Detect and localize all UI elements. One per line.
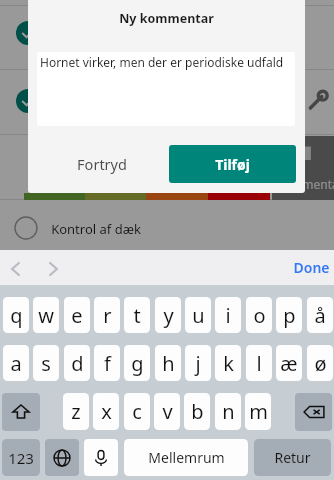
button[interactable]: p	[276, 297, 302, 333]
button[interactable]: æ	[276, 345, 302, 381]
staticText: Tilføj	[215, 155, 250, 174]
staticText: s	[41, 350, 51, 377]
button[interactable]: h	[155, 345, 181, 381]
staticText: y	[163, 302, 174, 329]
button[interactable]: w	[33, 297, 59, 333]
button[interactable]: v	[154, 393, 180, 430]
button[interactable]: j	[185, 345, 211, 381]
button[interactable]: Backspace	[295, 393, 332, 431]
staticText: a	[10, 350, 22, 377]
button[interactable]: q	[3, 297, 29, 333]
staticText: d	[71, 350, 84, 377]
staticText: n	[222, 398, 235, 425]
button[interactable]: Previous field	[4, 257, 28, 281]
staticText: Fortryd	[77, 154, 127, 174]
staticText: j	[195, 350, 201, 377]
button[interactable]: s	[33, 345, 59, 381]
button[interactable]: u	[185, 297, 211, 333]
button[interactable]: a	[3, 345, 29, 381]
button[interactable]: Shift	[2, 393, 40, 431]
staticText: i	[225, 302, 231, 329]
staticText: f	[104, 350, 111, 377]
staticText: 123	[8, 448, 34, 468]
button[interactable]: g	[124, 345, 150, 381]
button[interactable]: x	[93, 393, 119, 430]
button[interactable]: n	[215, 393, 241, 430]
staticText: Mellemrum	[148, 448, 225, 467]
staticText: ø	[314, 350, 327, 377]
staticText: æ	[280, 350, 298, 377]
button[interactable]: m	[245, 393, 271, 430]
button[interactable]: y	[155, 297, 181, 333]
button[interactable]: d	[64, 345, 90, 381]
button[interactable]: r	[94, 297, 120, 333]
button[interactable]: Retur	[254, 439, 331, 476]
button[interactable]: Tilføj	[169, 145, 296, 183]
staticText: x	[101, 398, 112, 425]
staticText: h	[162, 350, 175, 377]
staticText: å	[314, 302, 326, 329]
button[interactable]: f	[94, 345, 120, 381]
staticText: g	[131, 350, 144, 377]
staticText: q	[10, 302, 23, 329]
staticText: Done	[293, 258, 330, 277]
staticText: Retur	[274, 448, 311, 467]
button[interactable]: Next field	[41, 257, 65, 281]
staticText: u	[192, 302, 205, 329]
button[interactable]: l	[246, 345, 272, 381]
staticText: Hornet virker, men der er periodiske udf…	[40, 54, 284, 70]
staticText: t	[133, 302, 141, 329]
button[interactable]: 123	[2, 439, 40, 476]
button[interactable]: Change keyboard	[45, 439, 79, 476]
button[interactable]: ø	[307, 345, 333, 381]
button[interactable]: t	[124, 297, 150, 333]
button[interactable]: Mellemrum	[124, 439, 248, 476]
staticText: r	[103, 302, 112, 329]
staticText: m	[249, 398, 268, 425]
staticText: l	[256, 350, 262, 377]
button[interactable]: Fortryd	[48, 145, 155, 183]
staticText: z	[71, 398, 81, 425]
button[interactable]: b	[184, 393, 210, 430]
button[interactable]: o	[246, 297, 272, 333]
staticText: k	[223, 350, 234, 377]
staticText: Ny kommentar	[28, 10, 305, 27]
staticText: w	[38, 302, 54, 329]
button[interactable]: e	[64, 297, 90, 333]
button[interactable]: Done	[289, 256, 334, 278]
button[interactable]: Dictation	[84, 439, 118, 476]
staticText: b	[191, 398, 204, 425]
button[interactable]: z	[63, 393, 89, 430]
staticText: p	[283, 302, 296, 329]
button[interactable]: c	[124, 393, 150, 430]
staticText: Kontrol af dæk	[51, 220, 141, 238]
staticText: v	[162, 398, 173, 425]
button[interactable]: i	[215, 297, 241, 333]
button[interactable]: k	[215, 345, 241, 381]
staticText: c	[132, 398, 142, 425]
button[interactable]: å	[307, 297, 333, 333]
staticText: Kommentar	[276, 176, 334, 192]
staticText: e	[71, 302, 83, 329]
staticText: o	[253, 302, 266, 329]
